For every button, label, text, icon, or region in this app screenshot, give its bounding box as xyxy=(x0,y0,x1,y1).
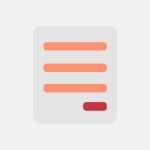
button[interactable]: Submit xyxy=(43,102,107,111)
button[interactable]: First field xyxy=(43,42,107,50)
button[interactable]: Third field xyxy=(43,84,107,92)
button[interactable]: Second field xyxy=(43,64,107,72)
